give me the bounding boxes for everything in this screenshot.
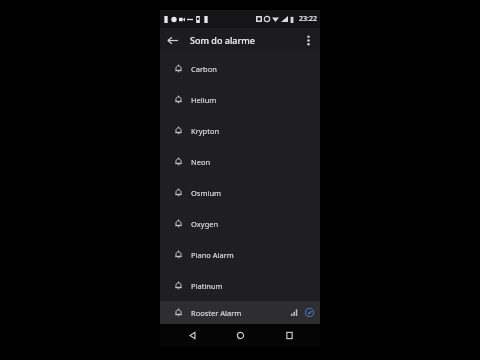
button[interactable]: Recent apps	[272, 324, 306, 346]
button[interactable]: Home	[223, 324, 257, 346]
staticText: Carbon	[191, 64, 310, 74]
button[interactable]: Neon	[160, 146, 320, 177]
staticText: 23:22	[299, 14, 317, 24]
button[interactable]: Back	[160, 28, 184, 52]
other: Selected	[305, 308, 314, 317]
staticText: Piano Alarm	[191, 250, 310, 260]
button[interactable]: Piano Alarm	[160, 239, 320, 270]
button[interactable]: Osmium	[160, 177, 320, 208]
staticText: Oxygen	[191, 219, 310, 229]
button[interactable]: Helium	[160, 84, 320, 115]
staticText: Platinum	[191, 281, 310, 291]
button[interactable]: Krypton	[160, 115, 320, 146]
staticText: Som do alarme	[190, 34, 296, 46]
staticText: Rooster Alarm	[191, 308, 291, 318]
button[interactable]: Oxygen	[160, 208, 320, 239]
staticText: Osmium	[191, 188, 310, 198]
staticText: Helium	[191, 95, 310, 105]
button[interactable]: Platinum	[160, 270, 320, 301]
button[interactable]: Rooster Alarm	[160, 301, 320, 324]
button[interactable]: Back	[175, 324, 209, 346]
button[interactable]: Carbon	[160, 53, 320, 84]
button[interactable]: More options	[296, 28, 320, 52]
staticText: Krypton	[191, 126, 310, 136]
staticText: Neon	[191, 157, 310, 167]
